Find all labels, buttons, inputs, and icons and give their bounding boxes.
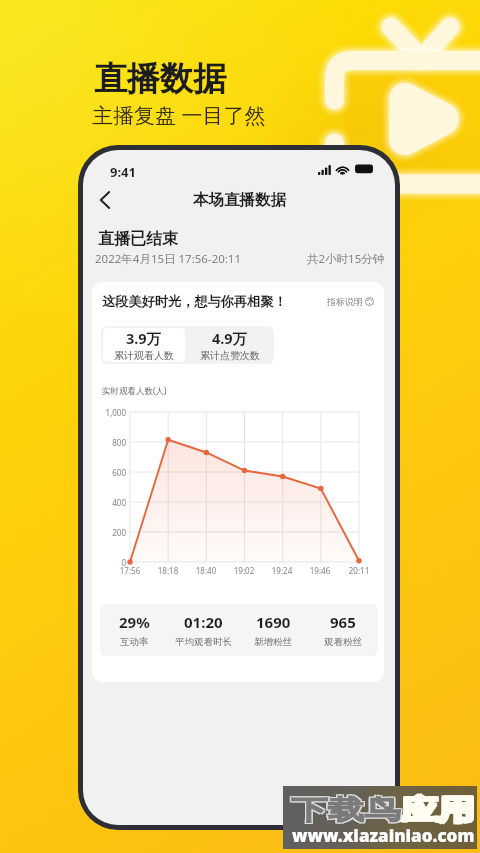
staticText: 18:18 (154, 565, 182, 576)
staticText: 800 (96, 437, 126, 448)
staticText: 累计观看人数 (114, 349, 174, 362)
staticText: 应用 (402, 792, 476, 826)
staticText: 本场直播数据 (193, 190, 286, 210)
staticText: 1690 (256, 612, 291, 632)
button[interactable]: 01:20 (169, 604, 238, 656)
staticText: 新增粉丝 (254, 636, 292, 648)
staticText: 4.9万 (212, 328, 248, 348)
button[interactable]: 965 (308, 604, 378, 656)
staticText: 17:56 (116, 565, 144, 576)
staticText: 0 (96, 557, 126, 568)
staticText: 9:41 (110, 163, 136, 181)
staticText: 这段美好时光，想与你再相聚！ (102, 293, 287, 310)
staticText: 下载鸟 (292, 792, 403, 826)
staticText: 200 (96, 527, 126, 538)
staticText: 互动率 (120, 636, 149, 648)
staticText: 指标说明 (327, 296, 363, 307)
staticText: 下载鸟 (291, 793, 401, 827)
staticText: 2022年4月15日 17:56-20:11 (95, 251, 242, 267)
staticText: 600 (96, 467, 126, 478)
staticText: 01:20 (184, 612, 223, 632)
staticText: 直播已结束 (98, 229, 178, 249)
staticText: 18:40 (192, 565, 220, 576)
staticText: 主播复盘 一目了然 (92, 101, 266, 130)
staticText: 累计点赞次数 (200, 349, 260, 362)
button[interactable]: 1690 (238, 604, 308, 656)
button[interactable]: 指标说明 (327, 296, 374, 307)
staticText: 观看粉丝 (324, 636, 362, 648)
staticText: 应用 (401, 793, 475, 827)
staticText: 下载鸟 (290, 794, 400, 828)
button[interactable]: 4.9万 (188, 328, 272, 362)
staticText: 29% (119, 612, 150, 632)
staticText: www.xiazainiao.com (292, 824, 475, 847)
staticText: 平均观看时长 (175, 636, 232, 648)
staticText: 19:02 (230, 565, 258, 576)
staticText: 下载鸟 (290, 792, 400, 826)
staticText: 下载鸟 (292, 794, 403, 828)
button[interactable]: 3.9万 (103, 328, 185, 362)
staticText: 应用 (400, 794, 473, 828)
button[interactable]: Back (87, 182, 123, 218)
staticText: 3.9万 (126, 328, 162, 348)
staticText: 应用 (402, 794, 476, 828)
staticText: 共2小时15分钟 (307, 251, 385, 267)
staticText: 直播数据 (94, 58, 226, 100)
staticText: 1,000 (96, 407, 126, 418)
staticText: 实时观看人数(人) (102, 385, 167, 397)
staticText: 应用 (400, 792, 473, 826)
staticText: 19:24 (268, 565, 296, 576)
staticText: 19:46 (306, 565, 334, 576)
staticText: 20:11 (345, 565, 373, 576)
staticText: 965 (330, 612, 356, 632)
button[interactable]: 29% (100, 604, 169, 656)
staticText: 400 (96, 497, 126, 508)
